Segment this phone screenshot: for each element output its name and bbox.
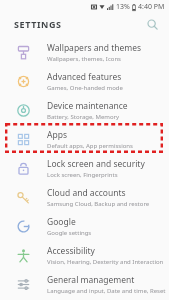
staticText: Google settings — [47, 229, 92, 237]
staticText: 4:40 PM — [138, 2, 165, 12]
button[interactable]: Lock screen and security — [0, 154, 169, 183]
staticText: Wallpapers and themes — [47, 42, 142, 54]
button[interactable]: General management — [0, 270, 169, 299]
button[interactable]: Apps — [0, 125, 169, 154]
button[interactable]: Wallpapers and themes — [0, 38, 169, 67]
staticText: Apps — [47, 129, 67, 141]
button[interactable]: Device maintenance — [0, 96, 169, 125]
staticText: Accessibility — [47, 245, 95, 257]
staticText: Games, One-handed mode — [47, 84, 123, 92]
staticText: SETTINGS — [14, 18, 62, 30]
staticText: Samsung Cloud, Backup and restore — [47, 200, 150, 208]
button[interactable]: Google — [0, 212, 169, 241]
staticText: Google — [47, 216, 76, 228]
button[interactable]: Search — [143, 15, 161, 33]
staticText: Default apps, App permissions — [47, 142, 133, 150]
staticText: Advanced features — [47, 71, 122, 83]
staticText: Language and input, Date and time, Reset — [47, 287, 166, 295]
staticText: Wallpapers, themes, Icons — [47, 55, 121, 63]
staticText: Vision, Hearing, Dexterity and Interacti… — [47, 258, 164, 266]
staticText: Lock screen and security — [47, 158, 145, 170]
staticText: Lock screen, Fingerprints — [47, 171, 118, 179]
staticText: 13% — [116, 2, 130, 12]
button[interactable]: Advanced features — [0, 67, 169, 96]
staticText: Cloud and accounts — [47, 187, 126, 199]
staticText: General management — [47, 274, 135, 286]
staticText: Device maintenance — [47, 100, 128, 112]
button[interactable]: Cloud and accounts — [0, 183, 169, 212]
button[interactable]: Accessibility — [0, 241, 169, 270]
staticText: Battery, Storage, Memory — [47, 113, 120, 121]
